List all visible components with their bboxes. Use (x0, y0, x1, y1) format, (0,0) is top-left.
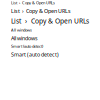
staticText: All windows (11, 35, 38, 42)
staticText: List › Copy & Open URLs (11, 0, 55, 5)
staticText: List › Copy & Open URLs (11, 7, 71, 14)
staticText: Smart (auto detect) (11, 44, 43, 49)
staticText: Smart (auto detect) (11, 51, 59, 58)
staticText: All windows (11, 27, 32, 32)
staticText: List › Copy & Open URLs (11, 16, 89, 25)
